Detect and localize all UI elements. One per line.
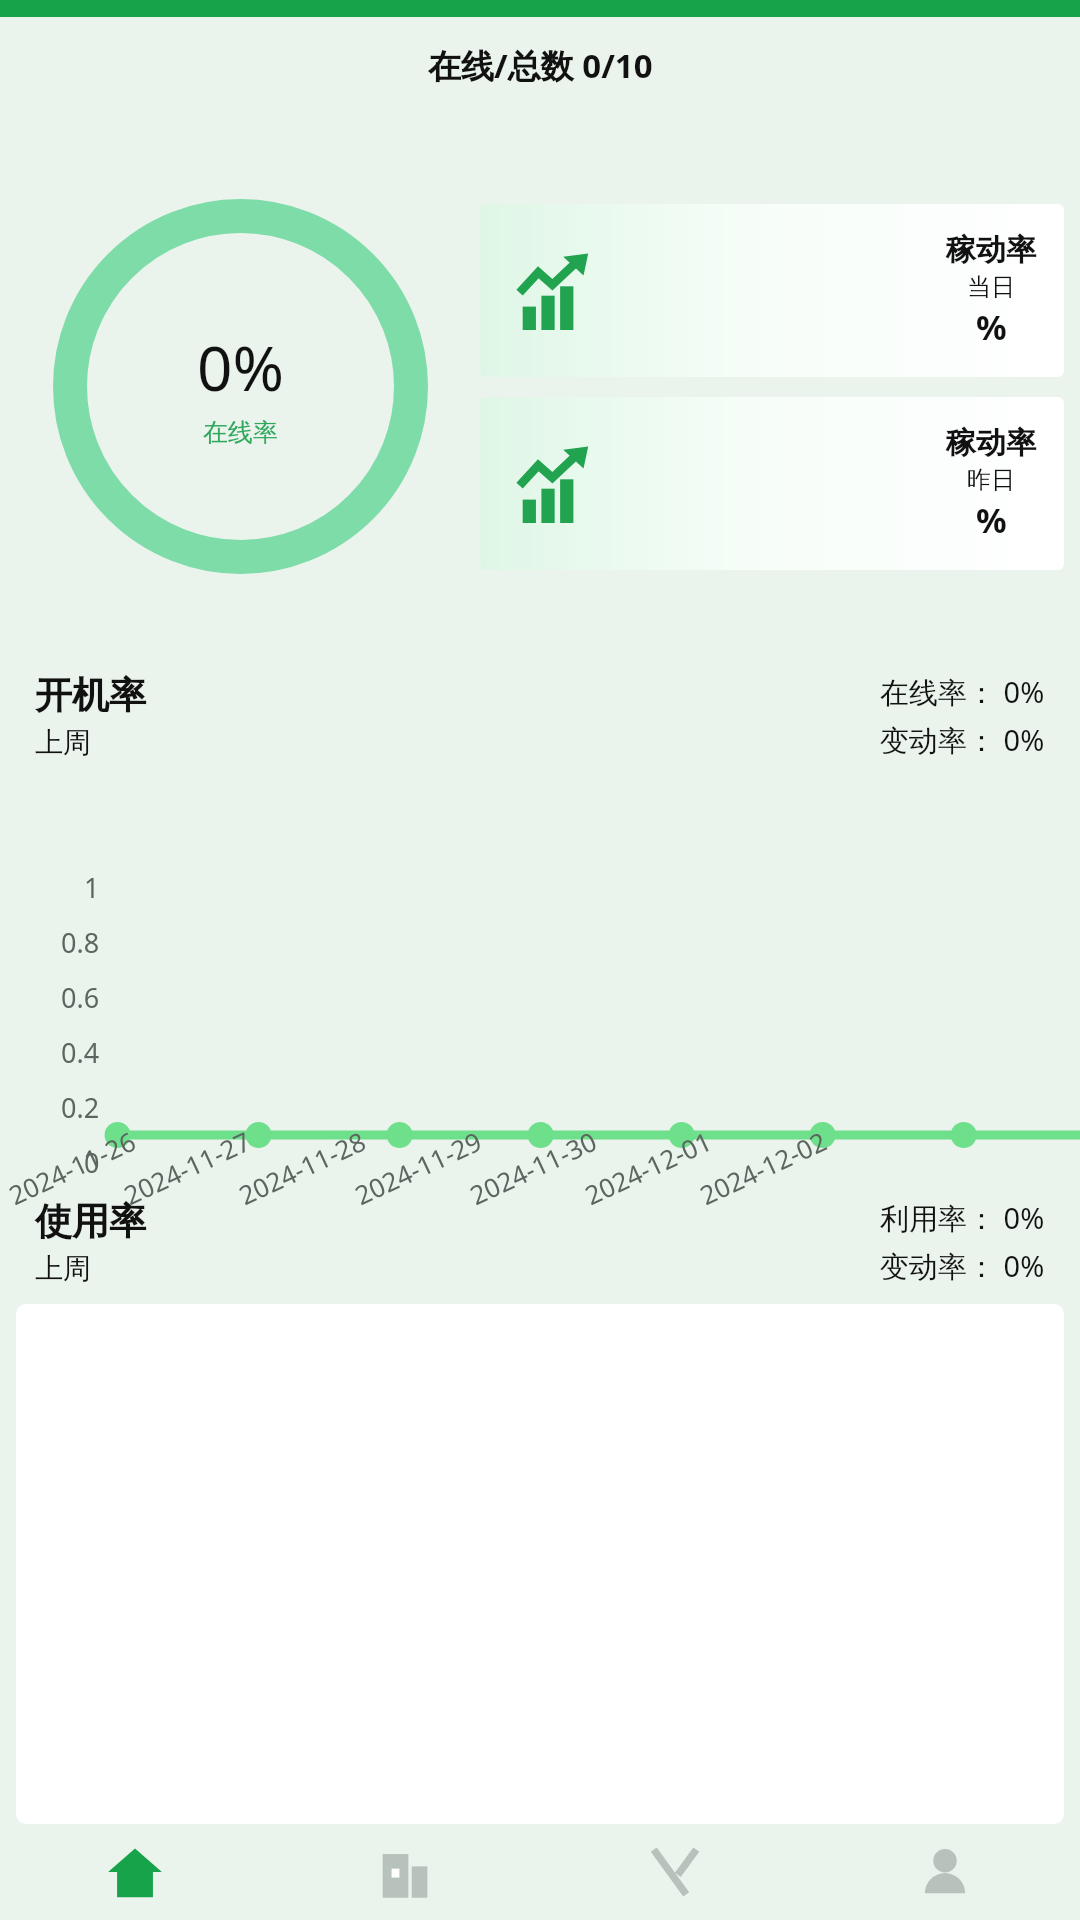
staticText: 2024-11-26 bbox=[3, 1123, 141, 1212]
staticText: 稼动率 bbox=[946, 424, 1036, 462]
staticText: 2024-12-01 bbox=[579, 1123, 717, 1212]
staticText: 稼动率 bbox=[946, 231, 1036, 269]
staticText: 0.6 bbox=[61, 979, 100, 1016]
staticText: 变动率： 0% bbox=[880, 720, 1045, 760]
button[interactable]: 稼动率 bbox=[480, 397, 1064, 570]
staticText: 昨日 bbox=[967, 465, 1015, 495]
staticText: 2024-12-02 bbox=[694, 1123, 832, 1212]
button[interactable]: 稼动率 bbox=[480, 204, 1064, 377]
staticText: 在线率： 0% bbox=[880, 672, 1045, 712]
staticText: 0.4 bbox=[61, 1034, 100, 1071]
staticText: 2024-11-30 bbox=[464, 1123, 602, 1212]
staticText: 利用率： 0% bbox=[880, 1198, 1045, 1238]
staticText: 使用率 bbox=[35, 1198, 146, 1245]
staticText: % bbox=[976, 304, 1007, 350]
staticText: % bbox=[976, 497, 1007, 543]
staticText: 2024-11-29 bbox=[349, 1123, 487, 1212]
staticText: 在线/总数 0/10 bbox=[428, 43, 653, 88]
button[interactable]: Home bbox=[0, 1824, 270, 1920]
staticText: 0.8 bbox=[61, 924, 100, 961]
staticText: 当日 bbox=[967, 272, 1015, 302]
staticText: 2024-11-27 bbox=[118, 1123, 256, 1212]
staticText: 0.2 bbox=[61, 1089, 100, 1126]
staticText: 2024-11-28 bbox=[233, 1123, 371, 1212]
button[interactable]: Statistics bbox=[270, 1824, 540, 1920]
staticText: 上周 bbox=[35, 725, 91, 760]
staticText: 开机率 bbox=[35, 672, 146, 719]
button[interactable]: Tools bbox=[540, 1824, 810, 1920]
staticText: 在线率 bbox=[203, 417, 278, 448]
button[interactable]: Profile bbox=[810, 1824, 1080, 1920]
staticText: 变动率： 0% bbox=[880, 1246, 1045, 1286]
staticText: 1 bbox=[84, 869, 100, 906]
staticText: 上周 bbox=[35, 1251, 91, 1286]
staticText: 0% bbox=[197, 325, 284, 409]
staticText: 0 bbox=[84, 1144, 100, 1181]
